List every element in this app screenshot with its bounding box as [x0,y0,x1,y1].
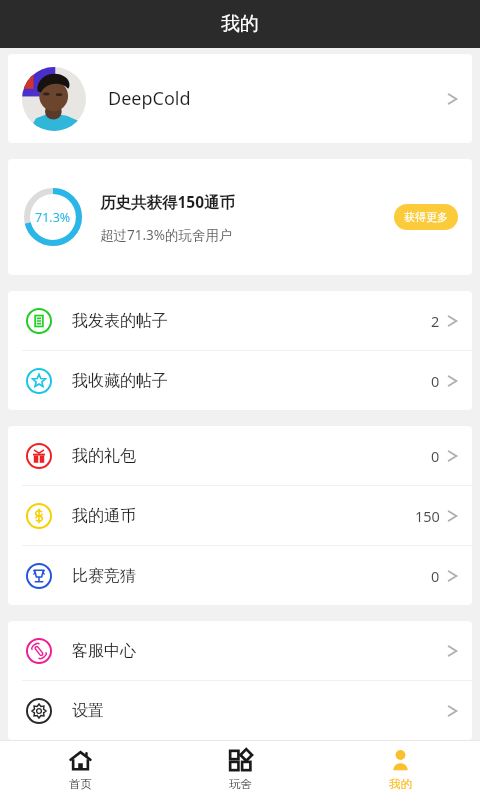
button[interactable]: 首页 [0,740,160,800]
button[interactable]: 客服中心 [8,621,472,680]
staticText: 设置 [72,701,104,721]
staticText: 我的通币 [72,506,136,526]
staticText: 我的礼包 [72,446,136,466]
button[interactable]: 我发表的帖子 [8,291,472,350]
other: 我收藏的帖子 [26,368,52,394]
button[interactable]: 71.3% [8,159,472,275]
staticText: 2 [431,311,440,331]
other: 比赛竞猜 [26,563,52,589]
other: 我发表的帖子 [26,308,52,334]
button[interactable]: 玩舍 [160,740,320,800]
staticText: 玩舍 [229,777,252,791]
button[interactable]: DeepCold [8,54,472,143]
staticText: 我的 [389,777,412,791]
button[interactable]: 比赛竞猜 [8,546,472,605]
other: 设置 [26,698,52,724]
button[interactable]: 我收藏的帖子 [8,351,472,410]
staticText: 0 [431,566,440,586]
other: 我的礼包 [26,443,52,469]
button[interactable]: 设置 [8,681,472,740]
other: 我的通币 [26,503,52,529]
staticText: 我发表的帖子 [72,311,168,331]
staticText: 客服中心 [72,641,136,661]
staticText: 71.3% [35,209,71,226]
button[interactable]: 我的礼包 [8,426,472,485]
staticText: 我收藏的帖子 [72,371,168,391]
staticText: 超过71.3%的玩舍用户 [100,226,233,244]
button[interactable]: 我的通币 [8,486,472,545]
staticText: 0 [431,371,440,391]
staticText: 获得更多 [404,210,448,224]
staticText: 我的 [221,12,259,36]
staticText: DeepCold [108,86,191,111]
other: 客服中心 [26,638,52,664]
staticText: 历史共获得150通币 [100,191,236,212]
button[interactable]: 我的 [320,740,480,800]
staticText: 0 [431,446,440,466]
staticText: 比赛竞猜 [72,566,136,586]
button[interactable]: 获得更多 [394,204,458,230]
staticText: 150 [415,506,440,526]
staticText: 首页 [69,777,92,791]
